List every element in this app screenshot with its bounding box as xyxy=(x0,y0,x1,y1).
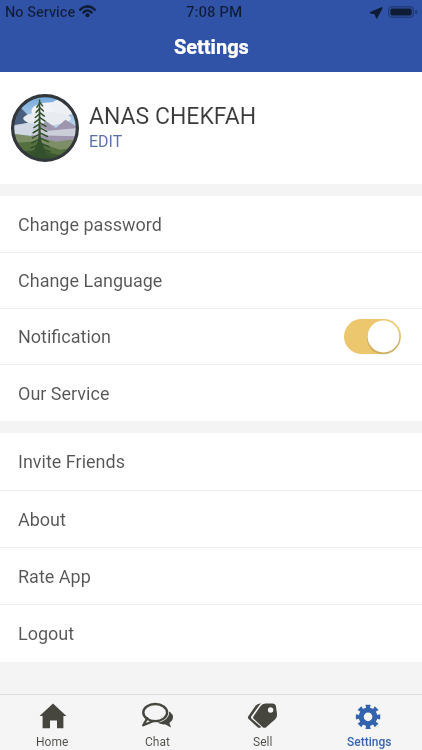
button[interactable]: ANAS CHEKFAH xyxy=(0,72,422,184)
staticText: Invite Friends xyxy=(18,451,125,472)
staticText: No Service xyxy=(5,4,76,21)
staticText: Rate App xyxy=(18,566,91,587)
button[interactable]: Logout xyxy=(0,605,422,662)
staticText: Our Service xyxy=(18,383,110,404)
button[interactable]: Rate App xyxy=(0,548,422,604)
staticText: Sell xyxy=(253,735,273,749)
button[interactable]: About xyxy=(0,491,422,547)
button[interactable]: Home xyxy=(0,695,105,750)
button[interactable]: Change password xyxy=(0,196,422,252)
button[interactable]: Chat xyxy=(105,695,210,750)
staticText: ANAS CHEKFAH xyxy=(89,103,257,130)
button[interactable]: Our Service xyxy=(0,365,422,421)
staticText: 7:08 PM xyxy=(186,3,243,21)
button[interactable]: Notification toggle xyxy=(344,319,401,354)
staticText: Change Language xyxy=(18,270,163,291)
staticText: Settings xyxy=(174,35,249,58)
staticText: Home xyxy=(36,735,69,749)
button[interactable]: Change Language xyxy=(0,253,422,308)
button[interactable]: Invite Friends xyxy=(0,433,422,490)
staticText: Chat xyxy=(145,735,170,749)
staticText: Settings xyxy=(347,735,392,749)
button[interactable]: Notification xyxy=(0,309,422,364)
staticText: Change password xyxy=(18,214,162,235)
button[interactable]: Settings xyxy=(316,695,422,750)
staticText: About xyxy=(18,509,66,530)
button[interactable]: Sell xyxy=(210,695,316,750)
staticText: Logout xyxy=(18,623,75,644)
staticText: EDIT xyxy=(89,132,123,151)
staticText: Notification xyxy=(18,326,112,347)
